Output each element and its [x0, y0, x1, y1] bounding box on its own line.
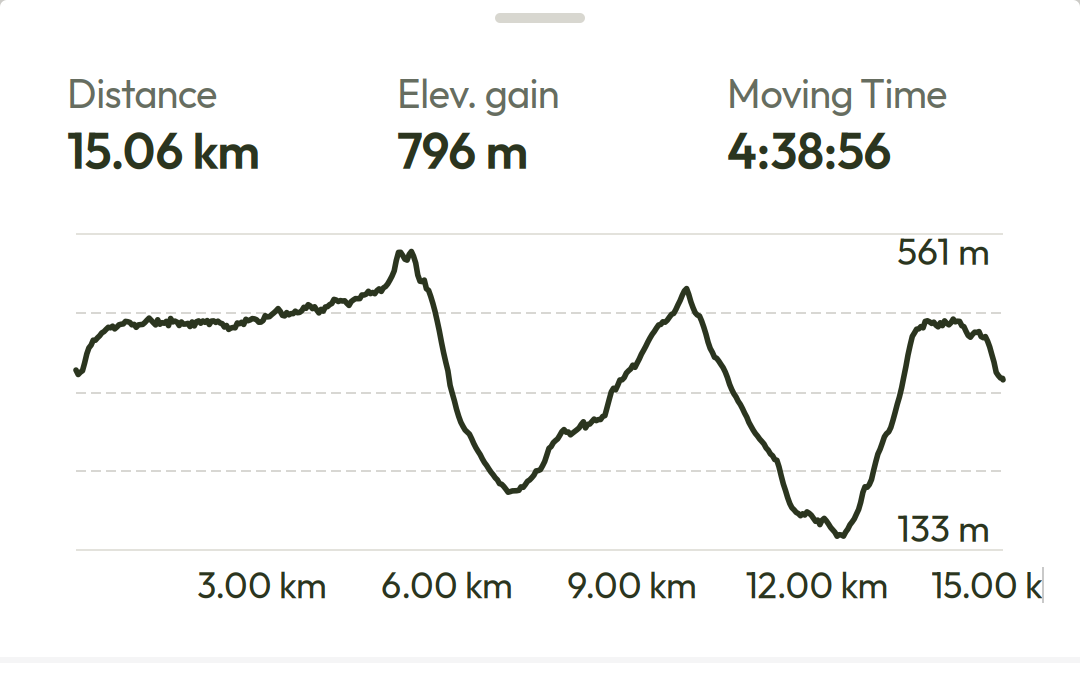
staticText: 15.06 km	[67, 119, 260, 182]
staticText: 561 m	[897, 227, 990, 274]
staticText: 3.00 km	[197, 562, 327, 608]
staticText: 15.00 km	[931, 562, 1073, 608]
staticText: 4:38:56	[727, 119, 892, 182]
staticText: 133 m	[897, 504, 990, 551]
button[interactable]: Elevation profile	[0, 208, 1080, 632]
staticText: Distance	[67, 68, 217, 118]
staticText: 12.00 km	[745, 562, 888, 608]
staticText: 6.00 km	[381, 562, 513, 608]
staticText: Moving Time	[727, 68, 947, 118]
staticText: Elev. gain	[397, 68, 560, 118]
button[interactable]: Dismiss	[440, 0, 640, 36]
staticText: 796 m	[397, 119, 528, 182]
staticText: 9.00 km	[567, 562, 697, 608]
